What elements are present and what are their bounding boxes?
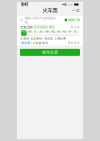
staticText: 学生票: [22, 41, 31, 45]
staticText: 9/16: [68, 33, 72, 36]
staticText: 火车票: [42, 7, 57, 14]
button[interactable]: 周一: [68, 30, 73, 36]
staticText: 9/10: [33, 33, 37, 36]
staticText: 日历: [74, 25, 80, 29]
staticText: 9/17: [74, 33, 78, 36]
staticText: 9/12: [45, 33, 49, 36]
staticText: 更多筛选: [68, 41, 80, 45]
staticText: 高铁/动车: [36, 41, 49, 45]
staticText: 查询车票: [42, 50, 58, 55]
staticText: 我的订单: [68, 18, 80, 22]
staticText: 周一: [68, 30, 72, 33]
staticText: 9/9: [28, 33, 31, 36]
staticText: 9/14: [57, 33, 61, 36]
button[interactable]: 周三: [39, 30, 44, 36]
button[interactable]: 更多筛选: [68, 41, 80, 45]
button[interactable]: More: [71, 8, 80, 13]
button[interactable]: 周二: [74, 30, 79, 36]
staticText: •••: [72, 8, 75, 13]
button[interactable]: 今天: [21, 30, 26, 36]
staticText: 周二: [33, 30, 37, 33]
button[interactable]: 请输入车次/出发地目的地: [20, 16, 65, 24]
staticText: 9/8: [22, 33, 25, 36]
staticText: 周六: [57, 30, 61, 33]
staticText: 请输入车次/出发地目的地: [24, 16, 55, 24]
staticText: 周三: [39, 30, 43, 33]
staticText: 出发站 北京南站: [20, 37, 42, 40]
staticText: 到达站 上海虹桥: [44, 37, 66, 40]
staticText: 周五: [51, 30, 55, 33]
button[interactable]: 周四: [45, 30, 50, 36]
button[interactable]: 周二: [33, 30, 38, 36]
button[interactable]: 查询车票: [20, 49, 80, 56]
button[interactable]: 周日: [62, 30, 67, 36]
staticText: 9/13: [51, 33, 55, 36]
staticText: 9:41: [21, 2, 28, 7]
button[interactable]: 我的订单: [65, 18, 80, 22]
staticText: WiFi: [68, 3, 73, 6]
staticText: 周四: [45, 30, 49, 33]
button[interactable]: 日历: [71, 25, 80, 29]
staticText: 9/11: [39, 33, 43, 36]
staticText: 09月08日 周日: [34, 25, 55, 29]
button[interactable]: 高铁/动车: [33, 41, 49, 45]
staticText: 明天: [28, 30, 32, 33]
button[interactable]: 周六: [56, 30, 61, 36]
staticText: 出发日期: [20, 25, 32, 29]
staticText: 周二: [74, 30, 78, 33]
button[interactable]: 学生票: [20, 41, 32, 44]
staticText: 周日: [62, 30, 66, 33]
button[interactable]: 周五: [50, 30, 55, 36]
button[interactable]: 明天: [27, 30, 32, 36]
staticText: 今天: [22, 30, 26, 33]
staticText: 9/15: [62, 33, 66, 36]
